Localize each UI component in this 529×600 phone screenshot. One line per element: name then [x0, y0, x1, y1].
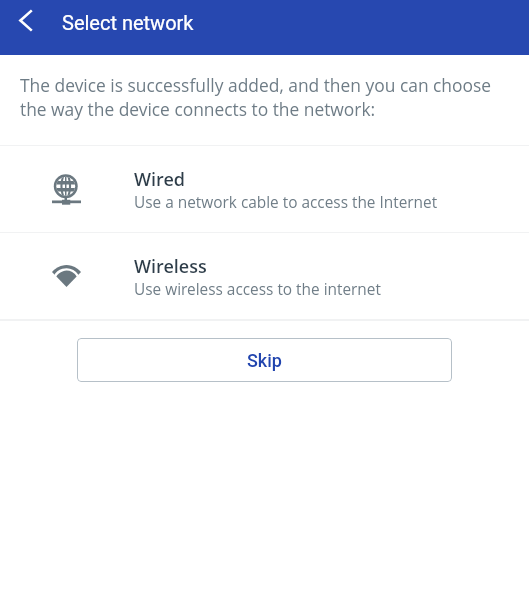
button[interactable]: Wireless	[0, 233, 529, 319]
button[interactable]: Wired	[0, 146, 529, 232]
staticText: Skip	[247, 350, 283, 371]
staticText: Select network	[62, 11, 194, 34]
staticText: Use wireless access to the internet	[134, 279, 381, 300]
staticText: The device is successfully added, and th…	[20, 73, 511, 121]
staticText: Use a network cable to access the Intern…	[134, 192, 438, 213]
staticText: Wireless	[134, 254, 207, 279]
staticText: Wired	[134, 167, 186, 192]
button[interactable]: Skip	[77, 338, 452, 382]
button[interactable]: Back	[5, 0, 45, 40]
